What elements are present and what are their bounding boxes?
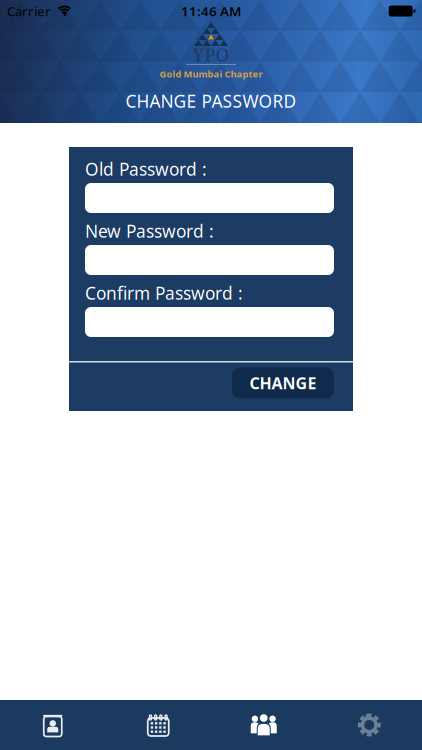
staticText: CHANGE PASSWORD <box>125 89 296 112</box>
button[interactable]: Settings <box>316 700 422 750</box>
staticText: Gold Mumbai Chapter <box>159 68 262 80</box>
staticText: 11:46 AM <box>181 2 241 20</box>
staticText: Carrier <box>7 2 51 20</box>
staticText: Old Password : <box>85 157 207 180</box>
button[interactable]: Confirm Password : <box>69 307 353 337</box>
staticText: YPO <box>192 42 229 67</box>
button[interactable]: Members <box>211 700 316 750</box>
staticText: New Password : <box>85 219 214 242</box>
button[interactable]: Contacts <box>0 700 105 750</box>
staticText: Confirm Password : <box>85 281 243 304</box>
button[interactable]: CHANGE <box>232 367 334 398</box>
staticText: CHANGE <box>249 372 316 394</box>
button[interactable]: New Password : <box>69 245 353 275</box>
button[interactable]: Old Password : <box>69 183 353 213</box>
button[interactable]: Calendar <box>105 700 211 750</box>
